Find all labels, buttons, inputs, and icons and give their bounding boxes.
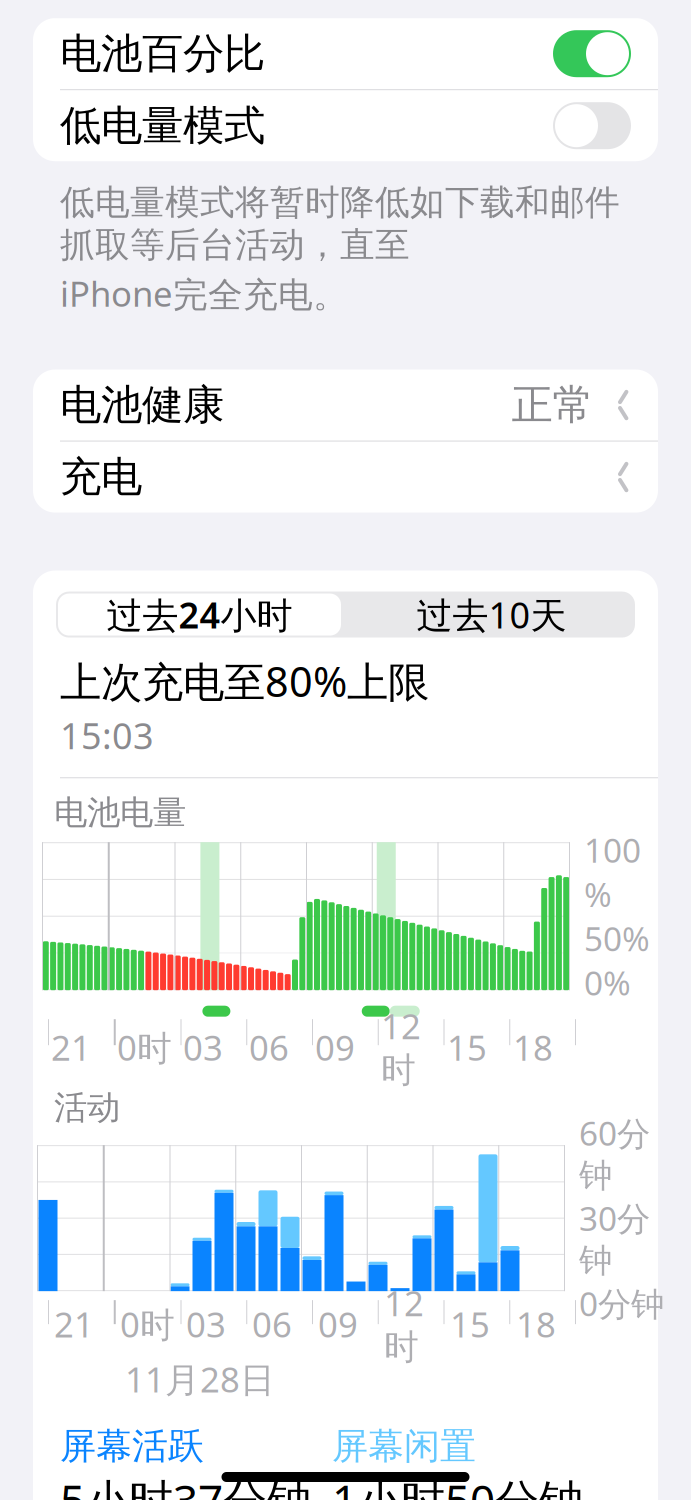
button[interactable]: 过去24小时 <box>58 594 341 636</box>
staticText: 屏幕闲置 <box>332 1424 476 1468</box>
staticText: 09 <box>315 1024 355 1070</box>
staticText: 上次充电至80%上限 <box>60 654 429 708</box>
staticText: 12时 <box>381 1003 421 1091</box>
staticText: 屏幕活跃 <box>60 1424 204 1468</box>
staticText: 0时 <box>120 1301 175 1347</box>
staticText: 正常 <box>511 380 593 430</box>
button[interactable]: 充电 <box>33 442 658 513</box>
staticText: 06 <box>249 1024 289 1070</box>
staticText: 15 <box>450 1301 490 1347</box>
staticText: 活动 <box>54 1087 120 1128</box>
staticText: 5小时37分钟 <box>60 1470 311 1500</box>
staticText: 30分钟 <box>579 1196 650 1281</box>
staticText: 18 <box>513 1024 553 1070</box>
staticText: 15:03 <box>60 711 154 759</box>
button[interactable]: 低电量模式 <box>33 90 658 161</box>
staticText: 过去10天 <box>416 591 566 638</box>
staticText: 18 <box>516 1301 556 1347</box>
staticText: 0分钟 <box>579 1281 664 1325</box>
staticText: 低电量模式将暂时降低如下载和邮件抓取等后台活动，直至 <box>60 181 620 266</box>
staticText: 充电 <box>60 452 142 502</box>
staticText: 03 <box>186 1301 226 1347</box>
staticText: 21 <box>54 1301 94 1347</box>
staticText: 过去24小时 <box>106 591 292 638</box>
staticText: 电池健康 <box>60 380 224 430</box>
staticText: 06 <box>252 1301 292 1347</box>
staticText: 09 <box>318 1301 358 1347</box>
staticText: 21 <box>51 1024 91 1070</box>
staticText: 1小时50分钟 <box>332 1470 583 1500</box>
staticText: 50% <box>584 916 650 960</box>
staticText: iPhone完全充电。 <box>60 270 348 316</box>
staticText: 60分钟 <box>579 1111 650 1196</box>
staticText: 电池电量 <box>54 792 186 833</box>
button[interactable]: 电池健康 <box>33 370 658 441</box>
staticText: 0时 <box>117 1024 172 1070</box>
staticText: 03 <box>183 1024 223 1070</box>
staticText: 15 <box>447 1024 487 1070</box>
staticText: 12时 <box>384 1280 424 1368</box>
button[interactable]: 过去10天 <box>350 594 633 636</box>
button[interactable]: 电池百分比 <box>33 18 658 89</box>
staticText: 0% <box>584 960 631 1005</box>
staticText: 11月28日 <box>125 1356 275 1402</box>
staticText: 电池百分比 <box>60 28 265 79</box>
staticText: 100% <box>584 828 641 916</box>
staticText: 低电量模式 <box>60 100 265 151</box>
